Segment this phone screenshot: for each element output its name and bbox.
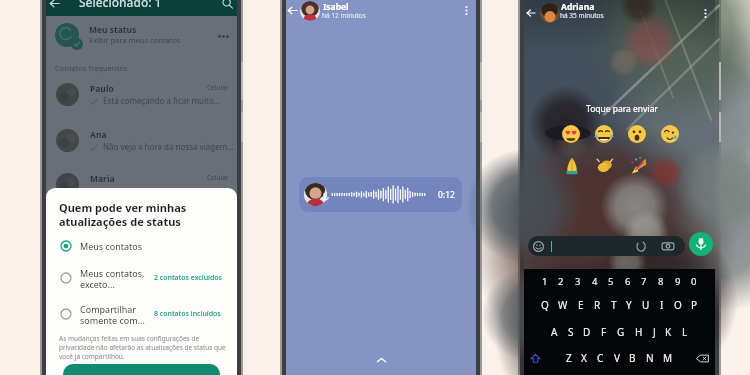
staticText: E xyxy=(578,298,584,312)
staticText: A xyxy=(551,325,558,339)
staticText: Isabel xyxy=(323,1,349,13)
button[interactable]: Voltar xyxy=(526,8,536,18)
other: Emoji xyxy=(533,241,544,252)
button[interactable]: 4 xyxy=(592,275,598,288)
staticText: Paulo xyxy=(90,83,114,95)
button[interactable]: L xyxy=(682,325,688,339)
button[interactable]: Voltar xyxy=(49,0,60,9)
button[interactable]: Pesquisar xyxy=(222,0,233,9)
button[interactable]: 6 xyxy=(625,275,631,288)
button[interactable]: Reagir xyxy=(629,157,647,175)
staticText: V xyxy=(614,351,620,365)
button[interactable] xyxy=(63,364,220,375)
button[interactable]: K xyxy=(665,325,672,339)
button[interactable]: Maria xyxy=(46,170,237,204)
button[interactable]: 0:12 xyxy=(299,177,462,212)
button[interactable]: Meus contatos xyxy=(46,233,237,259)
staticText: atualizações de status xyxy=(59,214,181,229)
staticText: 0 xyxy=(691,275,697,288)
button[interactable]: 3 xyxy=(575,275,581,288)
staticText: W xyxy=(558,298,568,312)
button[interactable]: Paulo xyxy=(46,80,237,114)
staticText: Compartilhar somente com... xyxy=(80,303,145,326)
staticText: N xyxy=(646,351,654,365)
button[interactable]: W xyxy=(558,298,568,312)
button[interactable]: J xyxy=(653,325,656,339)
staticText: 3 xyxy=(575,275,581,288)
button[interactable]: Reagir xyxy=(595,125,613,143)
button[interactable]: D xyxy=(583,325,591,339)
button[interactable]: B xyxy=(629,351,636,365)
button[interactable]: O xyxy=(674,298,682,312)
button[interactable]: P xyxy=(691,298,698,312)
button[interactable]: Q xyxy=(541,298,549,312)
staticText: Q xyxy=(541,298,549,312)
staticText: U xyxy=(642,298,650,312)
staticText: T xyxy=(611,298,617,312)
button[interactable]: Reagir xyxy=(563,157,581,175)
staticText: 4 xyxy=(592,275,598,288)
staticText: Adriana xyxy=(561,1,595,13)
staticText: Está começando a ficar muito... xyxy=(103,95,221,106)
staticText: H xyxy=(635,325,643,339)
button[interactable]: Ana xyxy=(46,126,237,160)
button[interactable]: 2 xyxy=(558,275,564,288)
button[interactable]: Z xyxy=(566,351,572,365)
button[interactable]: 8 xyxy=(658,275,664,288)
button[interactable]: 1 xyxy=(542,275,548,288)
button[interactable]: Emoji xyxy=(528,236,685,256)
button[interactable]: Shift xyxy=(530,353,541,364)
staticText: Toque para enviar xyxy=(586,103,658,115)
button[interactable]: Reagir xyxy=(628,125,646,143)
button[interactable]: 9 xyxy=(675,275,681,288)
button[interactable]: Mais opções xyxy=(461,5,472,16)
button[interactable]: Apagar xyxy=(696,352,709,365)
button[interactable]: Mais opções xyxy=(218,31,229,42)
button[interactable]: S xyxy=(568,325,574,339)
button[interactable]: U xyxy=(642,298,650,312)
staticText: L xyxy=(682,325,688,339)
button[interactable]: Mais opções xyxy=(700,8,711,19)
button[interactable]: E xyxy=(578,298,584,312)
staticText: 2 xyxy=(558,275,564,288)
button[interactable]: F xyxy=(601,325,607,339)
staticText: G xyxy=(617,325,625,339)
staticText: D xyxy=(583,325,591,339)
button[interactable]: Meus contatos, exceto... xyxy=(46,265,237,291)
staticText: Y xyxy=(626,298,632,312)
button[interactable]: 0 xyxy=(691,275,697,288)
button[interactable]: M xyxy=(663,351,673,365)
button[interactable]: Voltar xyxy=(287,5,298,16)
button[interactable]: Y xyxy=(626,298,632,312)
button[interactable]: 5 xyxy=(608,275,614,288)
button[interactable]: Gravar áudio xyxy=(689,232,713,256)
button[interactable]: Reagir xyxy=(661,125,679,143)
button[interactable]: Reagir xyxy=(562,125,580,143)
button[interactable]: V xyxy=(614,351,620,365)
button[interactable]: Perfil de Isabel xyxy=(300,1,320,21)
button[interactable]: G xyxy=(617,325,625,339)
button[interactable]: 7 xyxy=(641,275,647,288)
button[interactable]: T xyxy=(611,298,617,312)
staticText: 9 xyxy=(675,275,681,288)
button[interactable]: Compartilhar somente com... xyxy=(46,301,237,327)
button[interactable]: A xyxy=(551,325,558,339)
button[interactable]: X xyxy=(581,351,587,365)
button[interactable]: Reagir xyxy=(596,157,614,175)
staticText: S xyxy=(568,325,574,339)
staticText: há 35 minutos xyxy=(560,11,604,20)
staticText: As mudanças feitas em suas configurações… xyxy=(59,334,226,361)
staticText: I xyxy=(660,298,664,312)
button[interactable]: Meu status xyxy=(46,17,237,55)
button[interactable]: C xyxy=(597,351,604,365)
button[interactable]: R xyxy=(594,298,601,312)
button[interactable]: H xyxy=(635,325,643,339)
staticText: J xyxy=(653,325,656,339)
staticText: 2 contatos excluídos xyxy=(154,273,222,283)
staticText: M xyxy=(663,351,673,365)
button[interactable]: N xyxy=(646,351,654,365)
staticText: 1 xyxy=(542,275,548,288)
staticText: Celular xyxy=(207,173,229,182)
button[interactable]: I xyxy=(660,298,664,312)
staticText: Meu status xyxy=(89,24,137,36)
